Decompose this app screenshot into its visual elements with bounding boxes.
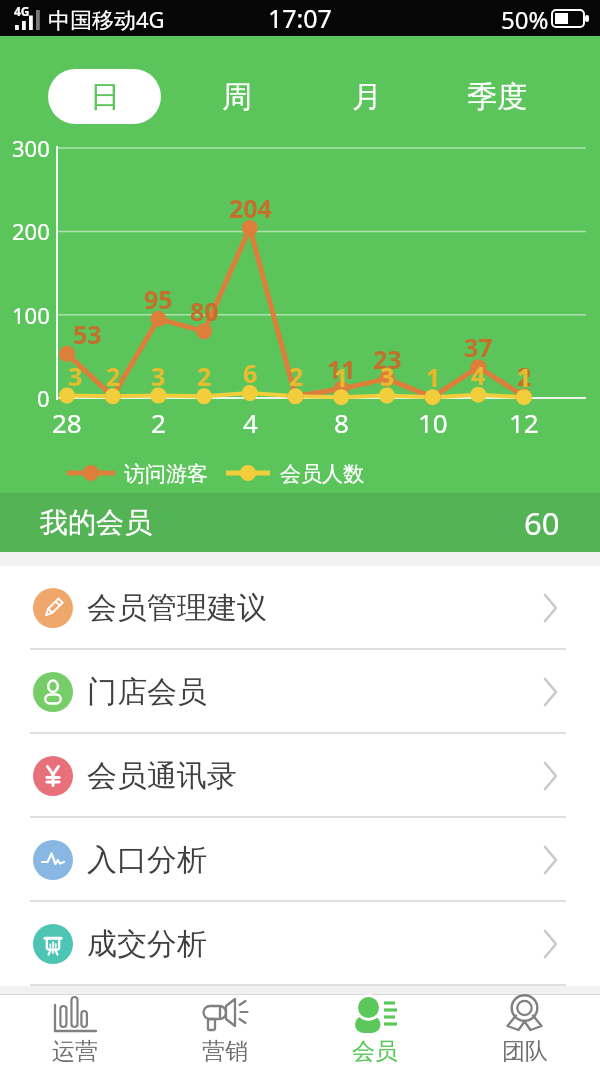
- staticText: 12: [509, 405, 539, 439]
- staticText: 2: [106, 359, 121, 393]
- staticText: 2: [106, 359, 121, 393]
- staticText: 我的会员: [40, 505, 152, 540]
- staticText: 53: [73, 317, 102, 351]
- staticText: 成交分析: [87, 925, 207, 963]
- staticText: 3: [380, 359, 395, 393]
- button[interactable]: 月: [337, 69, 397, 124]
- staticText: 2: [289, 359, 304, 393]
- button[interactable]: 营销: [150, 995, 300, 1067]
- staticText: 营销: [202, 1037, 248, 1066]
- button[interactable]: 会员通讯录: [0, 734, 600, 818]
- staticText: 3: [68, 359, 83, 393]
- staticText: 3: [151, 359, 166, 393]
- staticText: 1: [426, 360, 441, 394]
- staticText: 17:07: [268, 1, 332, 35]
- staticText: 入口分析: [87, 841, 207, 879]
- button[interactable]: 会员: [300, 995, 450, 1067]
- staticText: 10: [418, 405, 448, 439]
- staticText: 会员: [352, 1037, 398, 1066]
- staticText: 1: [517, 360, 532, 394]
- button[interactable]: 周: [207, 69, 267, 124]
- button[interactable]: 运营: [0, 995, 150, 1067]
- staticText: 周: [222, 78, 252, 116]
- staticText: 80: [190, 294, 219, 328]
- staticText: 中国移动4G: [48, 4, 165, 34]
- staticText: 50%: [501, 3, 549, 36]
- staticText: 60: [524, 502, 560, 544]
- staticText: 日: [90, 78, 120, 116]
- staticText: 28: [52, 405, 82, 439]
- staticText: 300: [12, 133, 50, 163]
- staticText: 11: [327, 352, 356, 386]
- staticText: 1: [426, 360, 441, 394]
- staticText: 运营: [52, 1037, 98, 1066]
- staticText: 访问游客: [124, 461, 208, 487]
- staticText: 200: [12, 216, 50, 246]
- button[interactable]: 入口分析: [0, 818, 600, 902]
- staticText: 0: [37, 383, 50, 413]
- staticText: 95: [144, 282, 173, 316]
- staticText: 2: [289, 359, 304, 393]
- button[interactable]: 门店会员: [0, 650, 600, 734]
- button[interactable]: 会员管理建议: [0, 566, 600, 650]
- staticText: 2: [517, 359, 532, 393]
- staticText: 204: [229, 191, 272, 225]
- staticText: 4: [243, 405, 258, 439]
- button[interactable]: 我的会员: [0, 493, 600, 552]
- staticText: 100: [12, 300, 50, 330]
- staticText: 4: [471, 358, 486, 392]
- staticText: 团队: [502, 1037, 548, 1066]
- staticText: 8: [334, 405, 349, 439]
- staticText: 37: [464, 330, 493, 364]
- staticText: 季度: [467, 78, 527, 116]
- staticText: 2: [197, 359, 212, 393]
- button[interactable]: 日: [48, 69, 161, 124]
- staticText: 1: [334, 360, 349, 394]
- button[interactable]: 季度: [452, 69, 542, 124]
- staticText: 月: [352, 78, 382, 116]
- staticText: 会员管理建议: [87, 589, 267, 627]
- staticText: 2: [151, 405, 166, 439]
- button[interactable]: 团队: [450, 995, 600, 1067]
- staticText: 会员通讯录: [87, 757, 237, 795]
- staticText: 4G: [14, 3, 30, 19]
- staticText: 23: [373, 342, 402, 376]
- staticText: 会员人数: [280, 461, 364, 487]
- button[interactable]: 成交分析: [0, 902, 600, 986]
- staticText: 门店会员: [87, 673, 207, 711]
- staticText: 6: [243, 356, 258, 390]
